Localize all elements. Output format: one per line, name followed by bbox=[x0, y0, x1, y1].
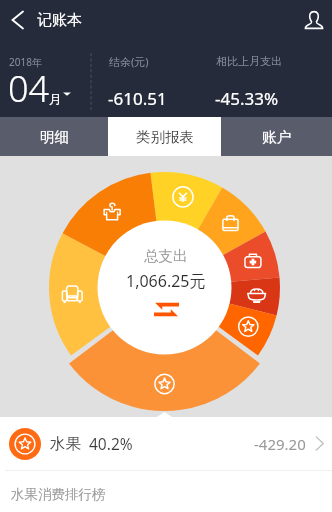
staticText: 类别报表 bbox=[136, 128, 194, 146]
staticText: -429.20 bbox=[254, 434, 306, 454]
staticText: 40.2% bbox=[89, 433, 133, 454]
staticText: 2018年 bbox=[9, 55, 42, 69]
button[interactable]: 水果 bbox=[0, 417, 332, 470]
staticText: 总支出 bbox=[144, 247, 188, 265]
staticText: 结余(元) bbox=[109, 54, 149, 69]
staticText: 水果消费排行榜 bbox=[11, 486, 106, 503]
button[interactable]: 账户 bbox=[221, 117, 332, 156]
staticText: 月 bbox=[49, 91, 62, 107]
staticText: 明细 bbox=[40, 128, 69, 146]
button[interactable]: 明细 bbox=[0, 117, 108, 156]
button[interactable]: Profile bbox=[296, 0, 332, 40]
staticText: 1,066.25元 bbox=[126, 270, 206, 292]
staticText: 相比上月支出 bbox=[216, 54, 282, 68]
button[interactable]: Back bbox=[0, 0, 34, 40]
staticText: -45.33% bbox=[215, 87, 279, 110]
staticText: 水果 bbox=[50, 434, 81, 454]
staticText: 记账本 bbox=[37, 11, 82, 30]
staticText: 04 bbox=[8, 64, 50, 113]
button[interactable]: 类别报表 bbox=[108, 117, 221, 156]
staticText: 账户 bbox=[262, 128, 291, 146]
staticText: -610.51 bbox=[108, 87, 167, 110]
